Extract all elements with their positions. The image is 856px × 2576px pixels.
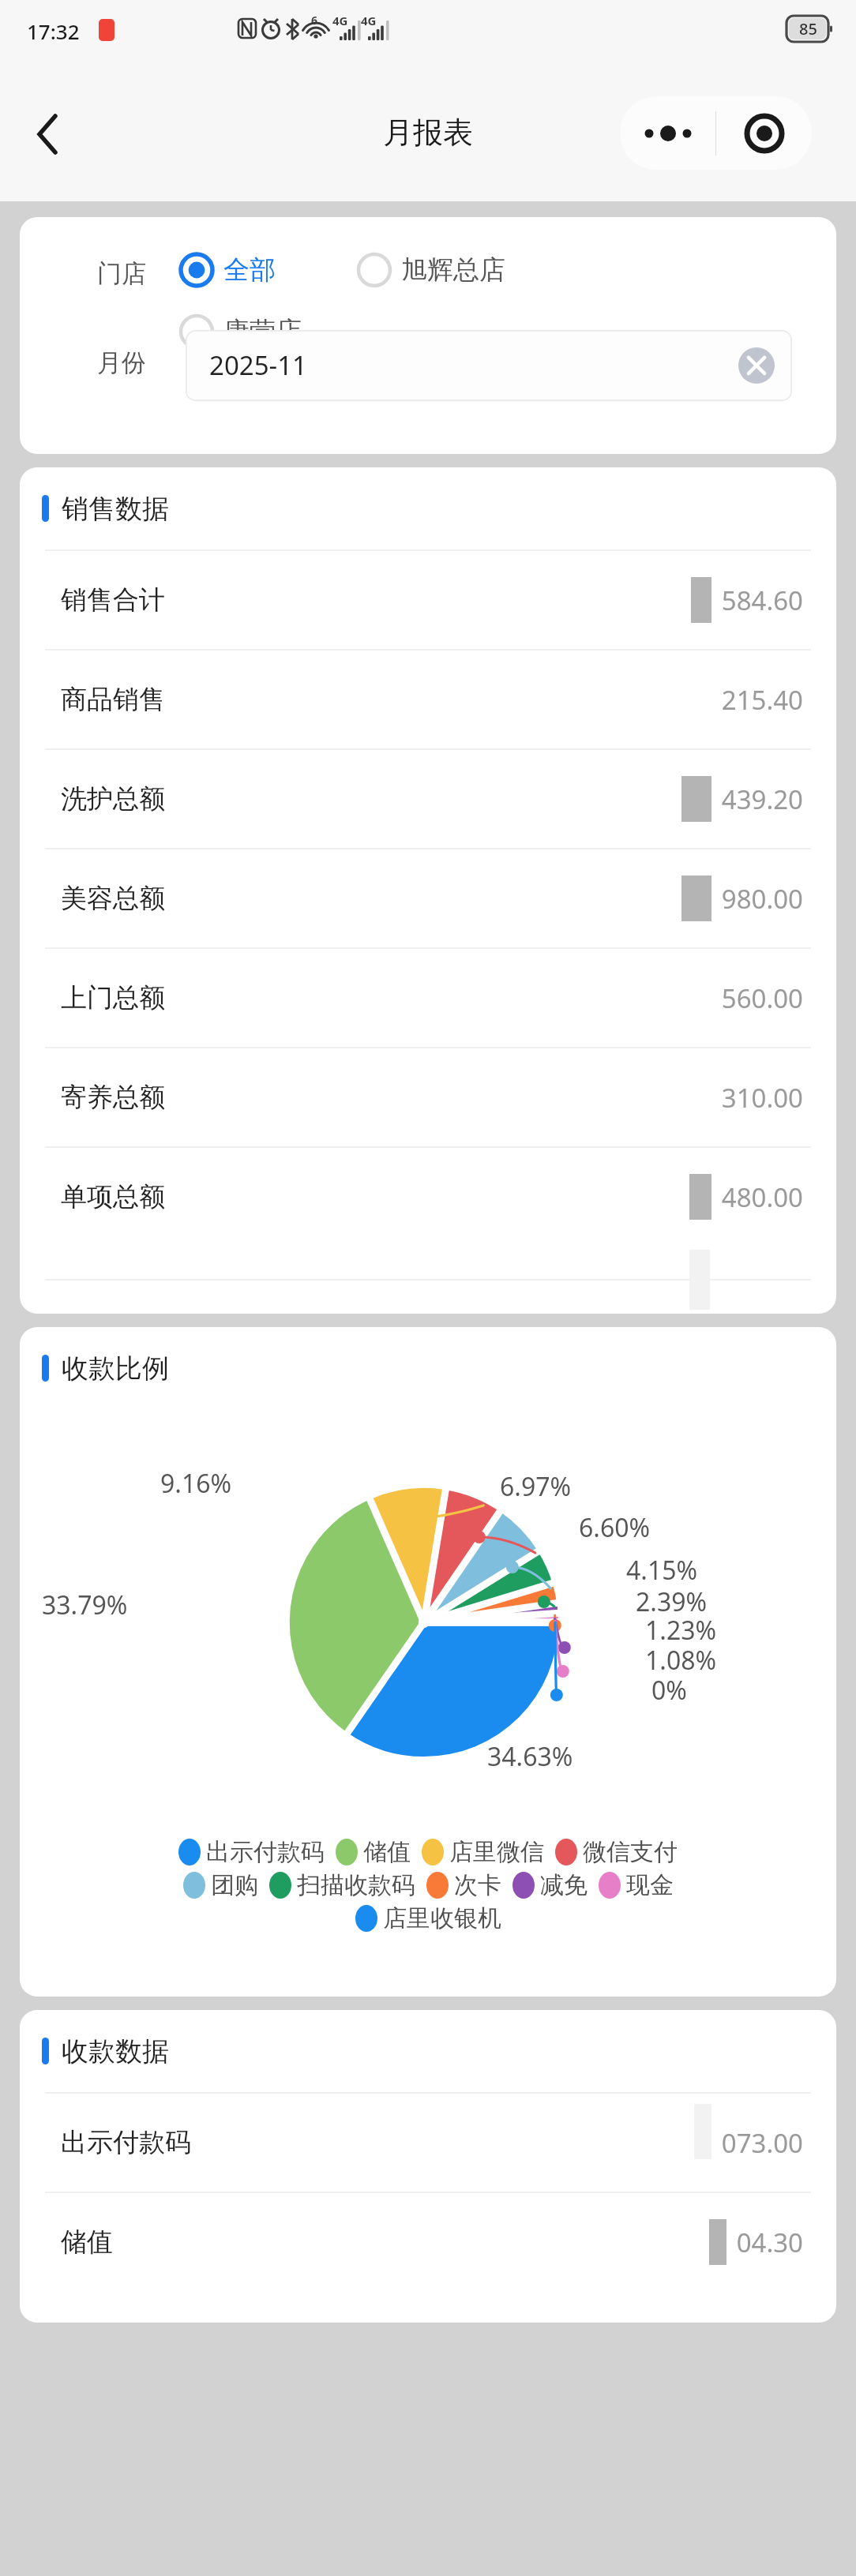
staticText: 洗护总额 [61, 782, 165, 816]
staticText: 收款数据 [62, 2034, 169, 2068]
button[interactable]: 康营店 [178, 301, 302, 362]
button[interactable]: 店里收银机 [355, 1903, 501, 1933]
staticText: 1.23% [645, 1613, 717, 1648]
button[interactable]: Back [8, 95, 87, 174]
staticText: 收款比例 [62, 1352, 169, 1385]
staticText: 月份 [97, 347, 146, 378]
staticText: 1.08% [645, 1643, 717, 1678]
staticText: 4G [361, 13, 377, 28]
button[interactable]: 全部 [178, 239, 276, 301]
staticText: 560.00 [721, 981, 803, 1016]
button[interactable]: 美容总额 [20, 849, 836, 947]
staticText: 85 [799, 18, 817, 39]
staticText: 073.00 [721, 2125, 803, 2161]
button[interactable]: 储值 [20, 2193, 836, 2291]
staticText: 34.63% [487, 1739, 573, 1774]
button[interactable]: More options [620, 96, 715, 170]
button[interactable]: 洗护总额 [20, 750, 836, 848]
staticText: 全部 [223, 253, 276, 287]
button[interactable]: 单项总额 [20, 1148, 836, 1246]
button[interactable]: 店里微信 [422, 1837, 544, 1867]
staticText: 门店 [97, 258, 146, 289]
button[interactable]: 2025-11 [186, 330, 792, 401]
staticText: 2025-11 [209, 347, 307, 383]
button[interactable]: 扫描收款码 [269, 1870, 415, 1900]
staticText: 扫描收款码 [297, 1870, 415, 1900]
button[interactable]: 团购 [183, 1870, 258, 1900]
button[interactable]: 次卡 [426, 1870, 501, 1900]
staticText: 销售数据 [62, 492, 169, 526]
staticText: 团购 [211, 1870, 258, 1900]
staticText: 9.16% [160, 1466, 232, 1501]
button[interactable]: 减免 [512, 1870, 588, 1900]
staticText: 微信支付 [583, 1837, 678, 1867]
staticText: 月报表 [383, 114, 473, 152]
staticText: 310.00 [721, 1080, 803, 1116]
staticText: 寄养总额 [61, 1081, 165, 1114]
button[interactable]: 微信支付 [555, 1837, 678, 1867]
staticText: 店里微信 [449, 1837, 544, 1867]
button[interactable]: 现金 [599, 1870, 674, 1900]
staticText: 33.79% [42, 1588, 128, 1622]
button[interactable]: 上门总额 [20, 949, 836, 1047]
button[interactable]: 商品销售 [20, 651, 836, 748]
staticText: 6.97% [500, 1469, 572, 1504]
staticText: 储值 [363, 1837, 411, 1867]
staticText: 店里收银机 [383, 1903, 501, 1933]
staticText: 6.60% [579, 1510, 651, 1545]
staticText: 美容总额 [61, 882, 165, 915]
staticText: 商品销售 [61, 683, 165, 716]
staticText: 减免 [540, 1870, 588, 1900]
button[interactable]: 储值 [336, 1837, 411, 1867]
staticText: 销售合计 [61, 583, 165, 617]
staticText: 0% [651, 1673, 687, 1708]
button[interactable]: 寄养总额 [20, 1048, 836, 1146]
staticText: 单项总额 [61, 1180, 165, 1213]
staticText: 出示付款码 [61, 2126, 191, 2159]
button[interactable]: 旭辉总店 [355, 239, 505, 301]
staticText: 4.15% [626, 1553, 698, 1588]
staticText: 04.30 [736, 2225, 803, 2260]
staticText: 215.40 [721, 682, 803, 718]
staticText: 次卡 [454, 1870, 501, 1900]
staticText: 6 [311, 13, 318, 28]
button[interactable]: 销售合计 [20, 551, 836, 649]
staticText: 2.39% [636, 1584, 708, 1619]
staticText: 出示付款码 [206, 1837, 325, 1867]
button[interactable]: Clear month [738, 347, 775, 384]
staticText: 17:32 [27, 17, 80, 45]
staticText: 584.60 [721, 583, 803, 618]
staticText: 980.00 [721, 881, 803, 917]
button[interactable]: Close [716, 96, 812, 170]
staticText: 康营店 [223, 315, 302, 348]
staticText: 上门总额 [61, 981, 165, 1014]
staticText: 4G [332, 13, 348, 28]
staticText: 旭辉总店 [401, 253, 505, 287]
staticText: 现金 [626, 1870, 674, 1900]
button[interactable]: 出示付款码 [178, 1837, 325, 1867]
staticText: 439.20 [721, 782, 803, 817]
staticText: 480.00 [721, 1179, 803, 1215]
staticText: 储值 [61, 2225, 113, 2259]
button[interactable]: 出示付款码 [20, 2094, 836, 2192]
